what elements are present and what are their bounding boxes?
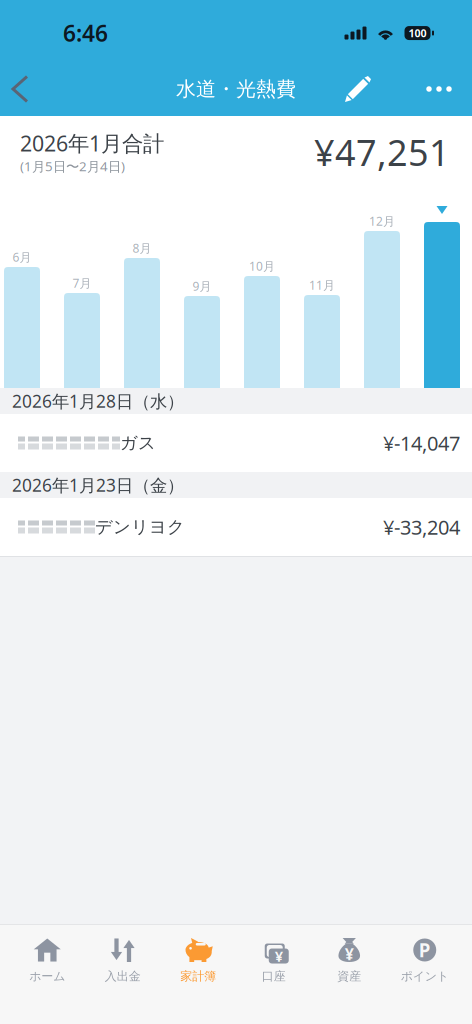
- button[interactable]: ¥: [311, 925, 387, 1001]
- button[interactable]: 入出金: [85, 925, 160, 1001]
- staticText: 資産: [337, 969, 361, 984]
- staticText: 7月: [72, 275, 91, 291]
- button[interactable]: More: [385, 63, 472, 115]
- staticText: (1月5日〜2月4日): [20, 157, 125, 175]
- staticText: 8月: [132, 240, 151, 256]
- staticText: 11月: [309, 277, 335, 293]
- button[interactable]: Edit: [331, 63, 385, 115]
- staticText: 10月: [249, 258, 275, 274]
- staticText: 家計簿: [180, 969, 216, 984]
- staticText: ¥-14,047: [383, 430, 460, 456]
- button[interactable]: 家計簿: [160, 925, 236, 1001]
- button[interactable]: ¥: [236, 925, 311, 1001]
- staticText: 水道・光熱費: [176, 77, 296, 101]
- staticText: ¥47,251: [314, 128, 450, 176]
- staticText: 12月: [369, 213, 395, 229]
- button[interactable]: デンリヨク: [0, 498, 472, 556]
- button[interactable]: Back: [0, 63, 48, 114]
- staticText: P: [419, 938, 431, 962]
- staticText: ホーム: [29, 969, 65, 984]
- staticText: 100: [408, 26, 426, 40]
- staticText: 6月: [12, 249, 31, 265]
- staticText: ¥: [345, 943, 354, 965]
- button[interactable]: ホーム: [9, 925, 85, 1001]
- staticText: 2026年1月合計: [20, 129, 164, 157]
- staticText: 2026年1月28日（水）: [12, 389, 184, 412]
- button[interactable]: ガス: [0, 414, 472, 472]
- button[interactable]: P: [387, 925, 462, 1001]
- staticText: ¥: [275, 946, 283, 966]
- staticText: 6:46: [63, 18, 108, 48]
- staticText: 口座: [262, 969, 286, 984]
- staticText: デンリヨク: [95, 516, 185, 538]
- staticText: ¥-33,204: [383, 514, 460, 540]
- staticText: 2026年1月23日（金）: [12, 473, 184, 496]
- staticText: ポイント: [401, 969, 449, 984]
- staticText: 入出金: [105, 969, 141, 984]
- staticText: 9月: [192, 278, 211, 294]
- staticText: ガス: [120, 432, 156, 454]
